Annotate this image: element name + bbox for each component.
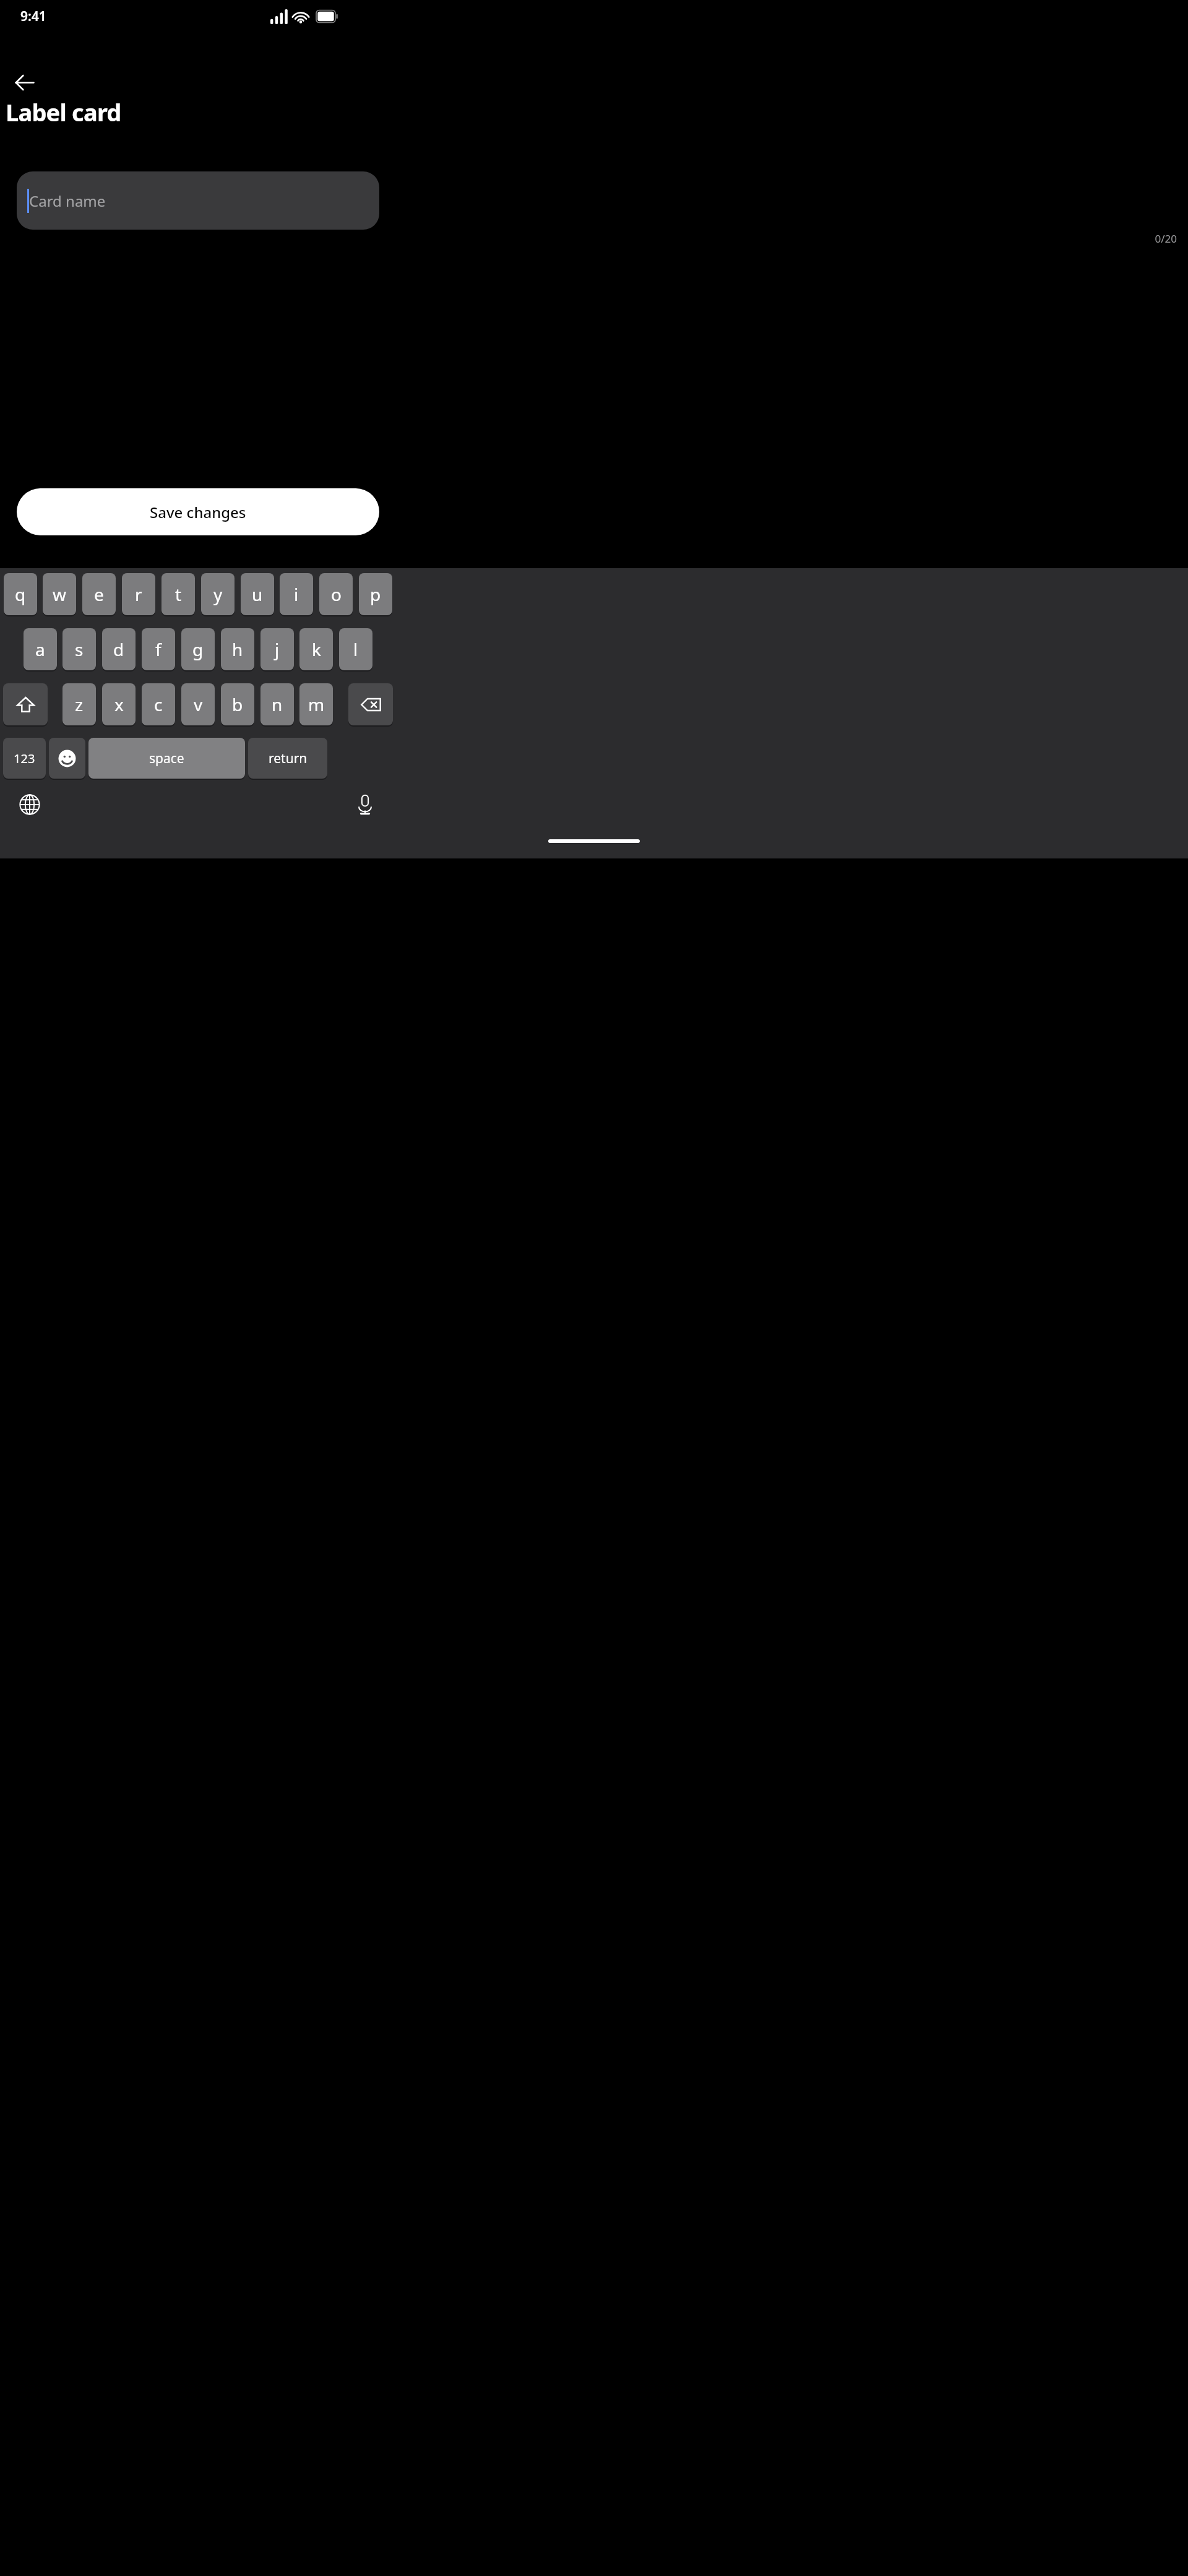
button[interactable]: space	[88, 738, 245, 779]
staticText: Save changes	[150, 502, 246, 522]
button[interactable]: Save changes	[17, 488, 379, 535]
staticText: g	[192, 638, 204, 661]
button[interactable]: Back	[6, 64, 42, 100]
button[interactable]: i	[280, 573, 313, 615]
staticText: 9:41	[20, 7, 46, 25]
staticText: n	[272, 693, 283, 716]
staticText: q	[15, 582, 26, 606]
staticText: z	[75, 693, 84, 716]
button[interactable]: Shift	[3, 683, 48, 725]
button[interactable]: q	[4, 573, 37, 615]
staticText: s	[75, 638, 84, 661]
button[interactable]: r	[122, 573, 155, 615]
button[interactable]: w	[43, 573, 76, 615]
button[interactable]: x	[102, 683, 136, 725]
staticText: Label card	[6, 96, 121, 128]
button[interactable]: y	[201, 573, 235, 615]
button[interactable]: d	[102, 628, 136, 670]
button[interactable]: Voice input	[348, 787, 382, 822]
button[interactable]: p	[359, 573, 392, 615]
staticText: b	[232, 693, 243, 716]
staticText: y	[213, 582, 223, 606]
staticText: c	[154, 693, 163, 716]
staticText: j	[275, 638, 280, 661]
staticText: p	[370, 582, 381, 606]
staticText: u	[252, 582, 263, 606]
staticText: a	[35, 638, 45, 661]
staticText: 0/20	[0, 231, 1177, 246]
staticText: d	[113, 638, 124, 661]
staticText: w	[53, 582, 67, 606]
button[interactable]: o	[319, 573, 353, 615]
staticText: Card name	[29, 191, 106, 211]
button[interactable]: Change keyboard	[12, 787, 47, 822]
button[interactable]: return	[248, 738, 327, 779]
staticText: k	[312, 638, 321, 661]
staticText: r	[135, 582, 142, 606]
staticText: i	[294, 582, 299, 606]
button[interactable]: b	[221, 683, 254, 725]
button[interactable]: h	[221, 628, 254, 670]
button[interactable]: z	[62, 683, 96, 725]
button[interactable]: n	[260, 683, 294, 725]
button[interactable]: u	[241, 573, 274, 615]
staticText: v	[194, 693, 203, 716]
staticText: o	[331, 582, 342, 606]
button[interactable]: j	[260, 628, 294, 670]
button[interactable]: k	[299, 628, 333, 670]
button[interactable]: 123	[3, 738, 46, 779]
staticText: t	[175, 582, 182, 606]
button[interactable]: Card name	[17, 171, 379, 230]
button[interactable]: f	[142, 628, 175, 670]
staticText: return	[269, 750, 308, 767]
button[interactable]: a	[24, 628, 57, 670]
button[interactable]: t	[161, 573, 195, 615]
staticText: e	[94, 582, 104, 606]
staticText: h	[232, 638, 243, 661]
button[interactable]: m	[299, 683, 333, 725]
staticText: x	[114, 693, 124, 716]
button[interactable]: l	[339, 628, 372, 670]
button[interactable]: v	[181, 683, 215, 725]
staticText: m	[308, 693, 325, 716]
button[interactable]: s	[62, 628, 96, 670]
staticText: l	[353, 638, 358, 661]
button[interactable]: e	[82, 573, 116, 615]
staticText: f	[155, 638, 161, 661]
button[interactable]: c	[142, 683, 175, 725]
button[interactable]: Backspace	[348, 683, 393, 725]
staticText: 123	[14, 750, 35, 767]
button[interactable]: g	[181, 628, 215, 670]
button[interactable]: Emoji	[49, 738, 85, 779]
staticText: space	[149, 750, 184, 767]
